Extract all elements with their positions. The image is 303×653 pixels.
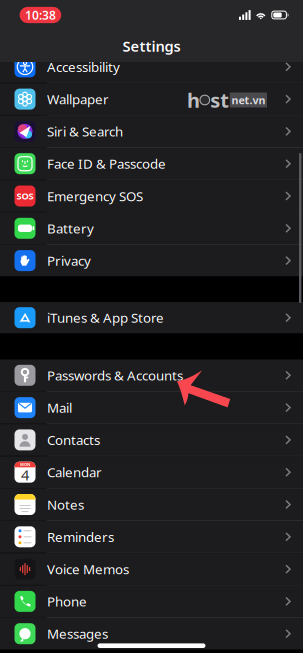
button[interactable]: Passwords & Accounts [0, 359, 303, 391]
button[interactable]: Messages [0, 618, 303, 649]
button[interactable]: Wallpaper [0, 83, 303, 115]
staticText: Siri & Search [47, 122, 123, 140]
staticText: Battery [47, 219, 94, 237]
staticText: Contacts [47, 431, 100, 449]
staticText: Calendar [47, 463, 102, 481]
staticText: Messages [47, 625, 108, 642]
staticText: st [210, 87, 229, 113]
staticText: Face ID & Passcode [47, 155, 166, 172]
button[interactable]: Accessibility [0, 51, 303, 83]
staticText: Wallpaper [47, 90, 109, 108]
staticText: MON [20, 462, 30, 467]
staticText: 4 [21, 465, 29, 484]
staticText: Voice Memos [47, 560, 129, 578]
staticText: SOS [16, 190, 33, 202]
button[interactable]: MON [0, 456, 303, 488]
staticText: iTunes & App Store [47, 309, 164, 326]
button[interactable]: Battery [0, 212, 303, 244]
button[interactable]: Siri & Search [0, 116, 303, 147]
button[interactable]: Phone [0, 586, 303, 617]
staticText: Notes [47, 496, 84, 513]
staticText: Phone [47, 592, 87, 610]
staticText: Passwords & Accounts [47, 366, 183, 384]
staticText: Mail [47, 399, 72, 416]
button[interactable]: SOS [0, 180, 303, 212]
button[interactable]: Notes [0, 489, 303, 520]
staticText: net.vn [231, 93, 265, 107]
button[interactable]: Privacy [0, 245, 303, 276]
staticText: Privacy [47, 252, 91, 269]
button[interactable]: Contacts [0, 424, 303, 456]
staticText: h [187, 87, 200, 113]
staticText: Accessibility [47, 58, 120, 76]
staticText: Settings [122, 36, 180, 56]
button[interactable]: Face ID & Passcode [0, 148, 303, 179]
staticText: Emergency SOS [47, 187, 143, 205]
button[interactable]: Mail [0, 392, 303, 423]
staticText: Reminders [47, 528, 114, 546]
staticText: 10:38 [25, 7, 56, 23]
button[interactable]: Voice Memos [0, 553, 303, 585]
button[interactable]: Reminders [0, 521, 303, 553]
button[interactable]: iTunes & App Store [0, 302, 303, 333]
